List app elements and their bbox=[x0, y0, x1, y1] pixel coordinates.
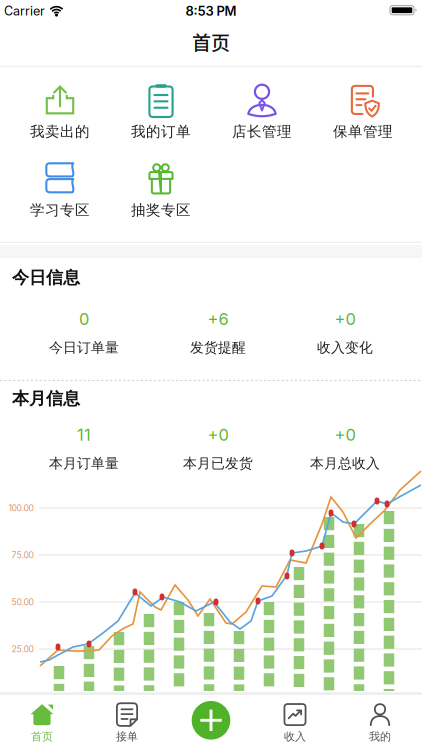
staticText: 本月总收入 bbox=[310, 455, 380, 472]
staticText: +0 bbox=[334, 425, 355, 445]
staticText: 保单管理 bbox=[333, 123, 393, 141]
staticText: 接单 bbox=[116, 730, 138, 743]
staticText: 本月信息 bbox=[12, 388, 80, 409]
staticText: 11 bbox=[77, 425, 91, 445]
staticText: 今日信息 bbox=[12, 267, 80, 288]
staticText: 8:53 PM bbox=[185, 3, 236, 19]
staticText: 本月已发货 bbox=[183, 455, 253, 472]
button[interactable]: 抽奖专区 bbox=[131, 162, 191, 219]
staticText: 学习专区 bbox=[30, 201, 90, 219]
staticText: 抽奖专区 bbox=[131, 201, 191, 219]
staticText: 我的订单 bbox=[131, 123, 191, 141]
staticText: 店长管理 bbox=[232, 123, 292, 141]
staticText: 首页 bbox=[31, 730, 53, 743]
staticText: 0 bbox=[79, 309, 89, 329]
staticText: 我卖出的 bbox=[30, 123, 90, 141]
button[interactable]: 接单 bbox=[89, 697, 165, 747]
staticText: 本月订单量 bbox=[49, 455, 119, 472]
button[interactable]: 我卖出的 bbox=[30, 83, 90, 141]
staticText: +6 bbox=[207, 309, 228, 329]
staticText: 50.00 bbox=[11, 597, 33, 607]
button[interactable]: 我的 bbox=[342, 697, 418, 747]
staticText: 发货提醒 bbox=[190, 339, 246, 356]
staticText: 75.00 bbox=[11, 550, 33, 560]
staticText: 收入 bbox=[284, 730, 306, 743]
staticText: 首页 bbox=[192, 28, 230, 56]
staticText: 100.00 bbox=[8, 503, 33, 513]
staticText: 今日订单量 bbox=[49, 339, 119, 356]
button[interactable]: 学习专区 bbox=[30, 162, 90, 219]
button[interactable]: 我的订单 bbox=[131, 83, 191, 141]
button[interactable]: 新增 bbox=[191, 701, 230, 740]
staticText: 25.00 bbox=[11, 644, 33, 654]
button[interactable]: 保单管理 bbox=[333, 83, 393, 141]
staticText: Carrier bbox=[4, 3, 45, 18]
staticText: 收入变化 bbox=[317, 339, 373, 356]
staticText: +0 bbox=[207, 425, 228, 445]
button[interactable]: 店长管理 bbox=[232, 83, 292, 141]
button[interactable]: 收入 bbox=[257, 697, 333, 747]
staticText: +0 bbox=[334, 309, 355, 329]
button[interactable]: 首页 bbox=[4, 697, 80, 747]
staticText: 我的 bbox=[369, 730, 391, 743]
